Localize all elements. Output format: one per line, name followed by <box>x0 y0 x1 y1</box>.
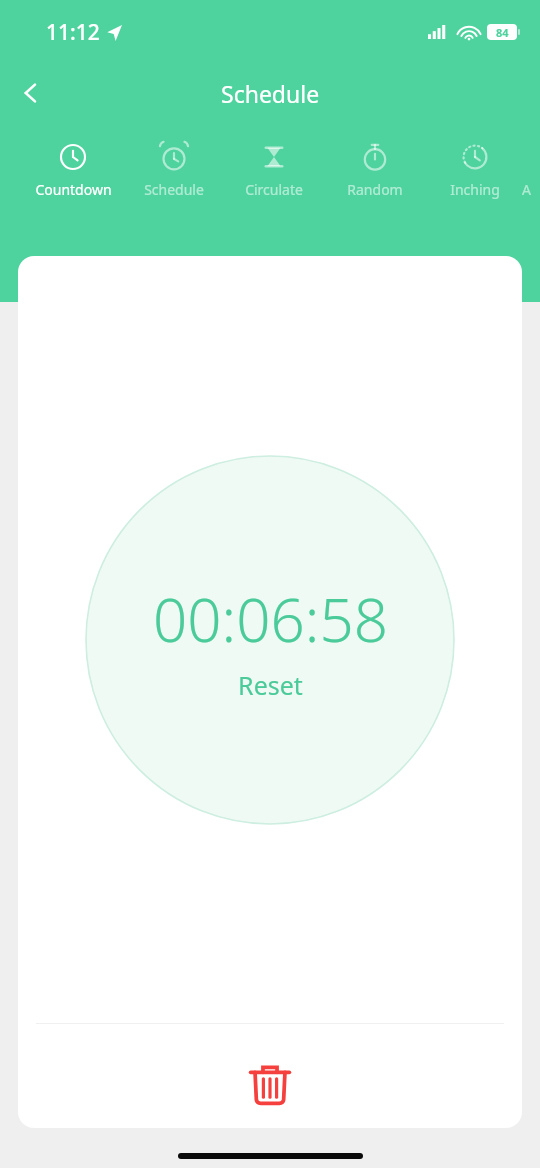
button[interactable]: Back <box>8 70 54 116</box>
button[interactable]: Schedule <box>124 134 224 199</box>
staticText: Countdown <box>35 180 112 199</box>
button[interactable]: Circulate <box>224 134 324 199</box>
staticText: Random <box>347 180 403 199</box>
button[interactable]: A <box>522 134 540 199</box>
staticText: Reset <box>238 668 303 702</box>
button[interactable]: 00:06:58 <box>85 455 455 825</box>
staticText: Schedule <box>221 78 320 109</box>
button[interactable]: Random <box>325 134 425 199</box>
staticText: 00:06:58 <box>153 578 388 660</box>
staticText: 84 <box>496 25 509 40</box>
staticText: 11:12 <box>46 18 100 47</box>
staticText: Schedule <box>144 180 204 199</box>
button[interactable]: Countdown <box>23 134 123 199</box>
staticText: Circulate <box>245 180 303 199</box>
staticText: A <box>522 180 531 199</box>
button[interactable]: Inching <box>425 134 525 199</box>
staticText: Inching <box>450 180 500 199</box>
button[interactable]: Delete <box>237 1051 303 1117</box>
